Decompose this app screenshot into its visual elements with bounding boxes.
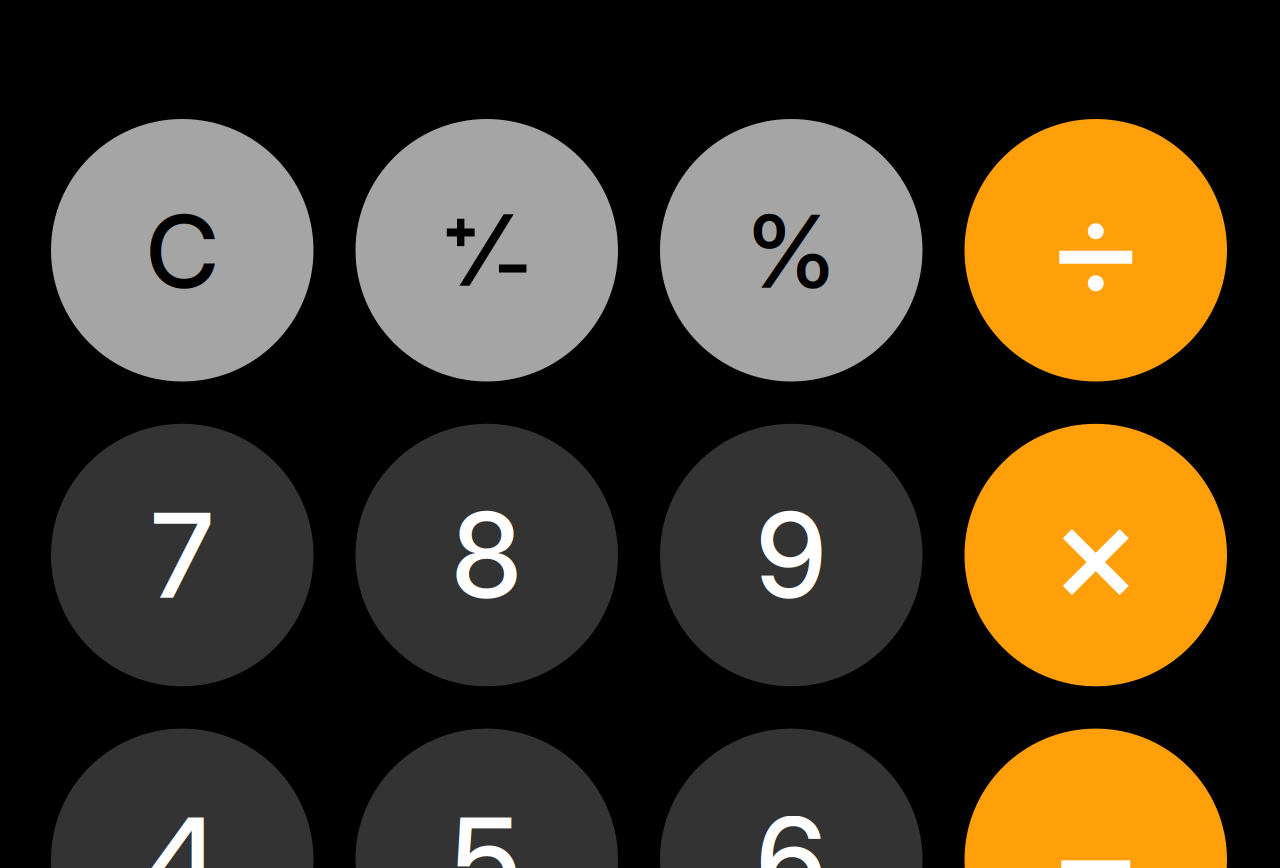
button[interactable]: 9 bbox=[660, 424, 922, 686]
staticText: 9 bbox=[756, 484, 826, 626]
button[interactable]: Plus Minus bbox=[355, 119, 618, 381]
staticText: 7 bbox=[151, 484, 213, 626]
button[interactable]: 5 bbox=[355, 729, 618, 868]
button[interactable]: 4 bbox=[51, 729, 313, 868]
button[interactable]: 7 bbox=[51, 424, 313, 686]
button[interactable]: 8 bbox=[355, 424, 618, 686]
staticText: 4 bbox=[145, 789, 219, 868]
staticText: 5 bbox=[452, 789, 521, 868]
button[interactable]: 6 bbox=[660, 729, 922, 868]
staticText: 8 bbox=[452, 484, 522, 626]
button[interactable]: % bbox=[660, 119, 922, 381]
button[interactable]: Subtract bbox=[964, 729, 1227, 868]
staticText: C bbox=[146, 191, 218, 312]
button[interactable]: Divide bbox=[964, 119, 1227, 381]
button[interactable]: Multiply bbox=[964, 424, 1227, 686]
staticText: % bbox=[747, 191, 835, 312]
button[interactable]: C bbox=[51, 119, 313, 381]
staticText: 6 bbox=[756, 789, 826, 868]
